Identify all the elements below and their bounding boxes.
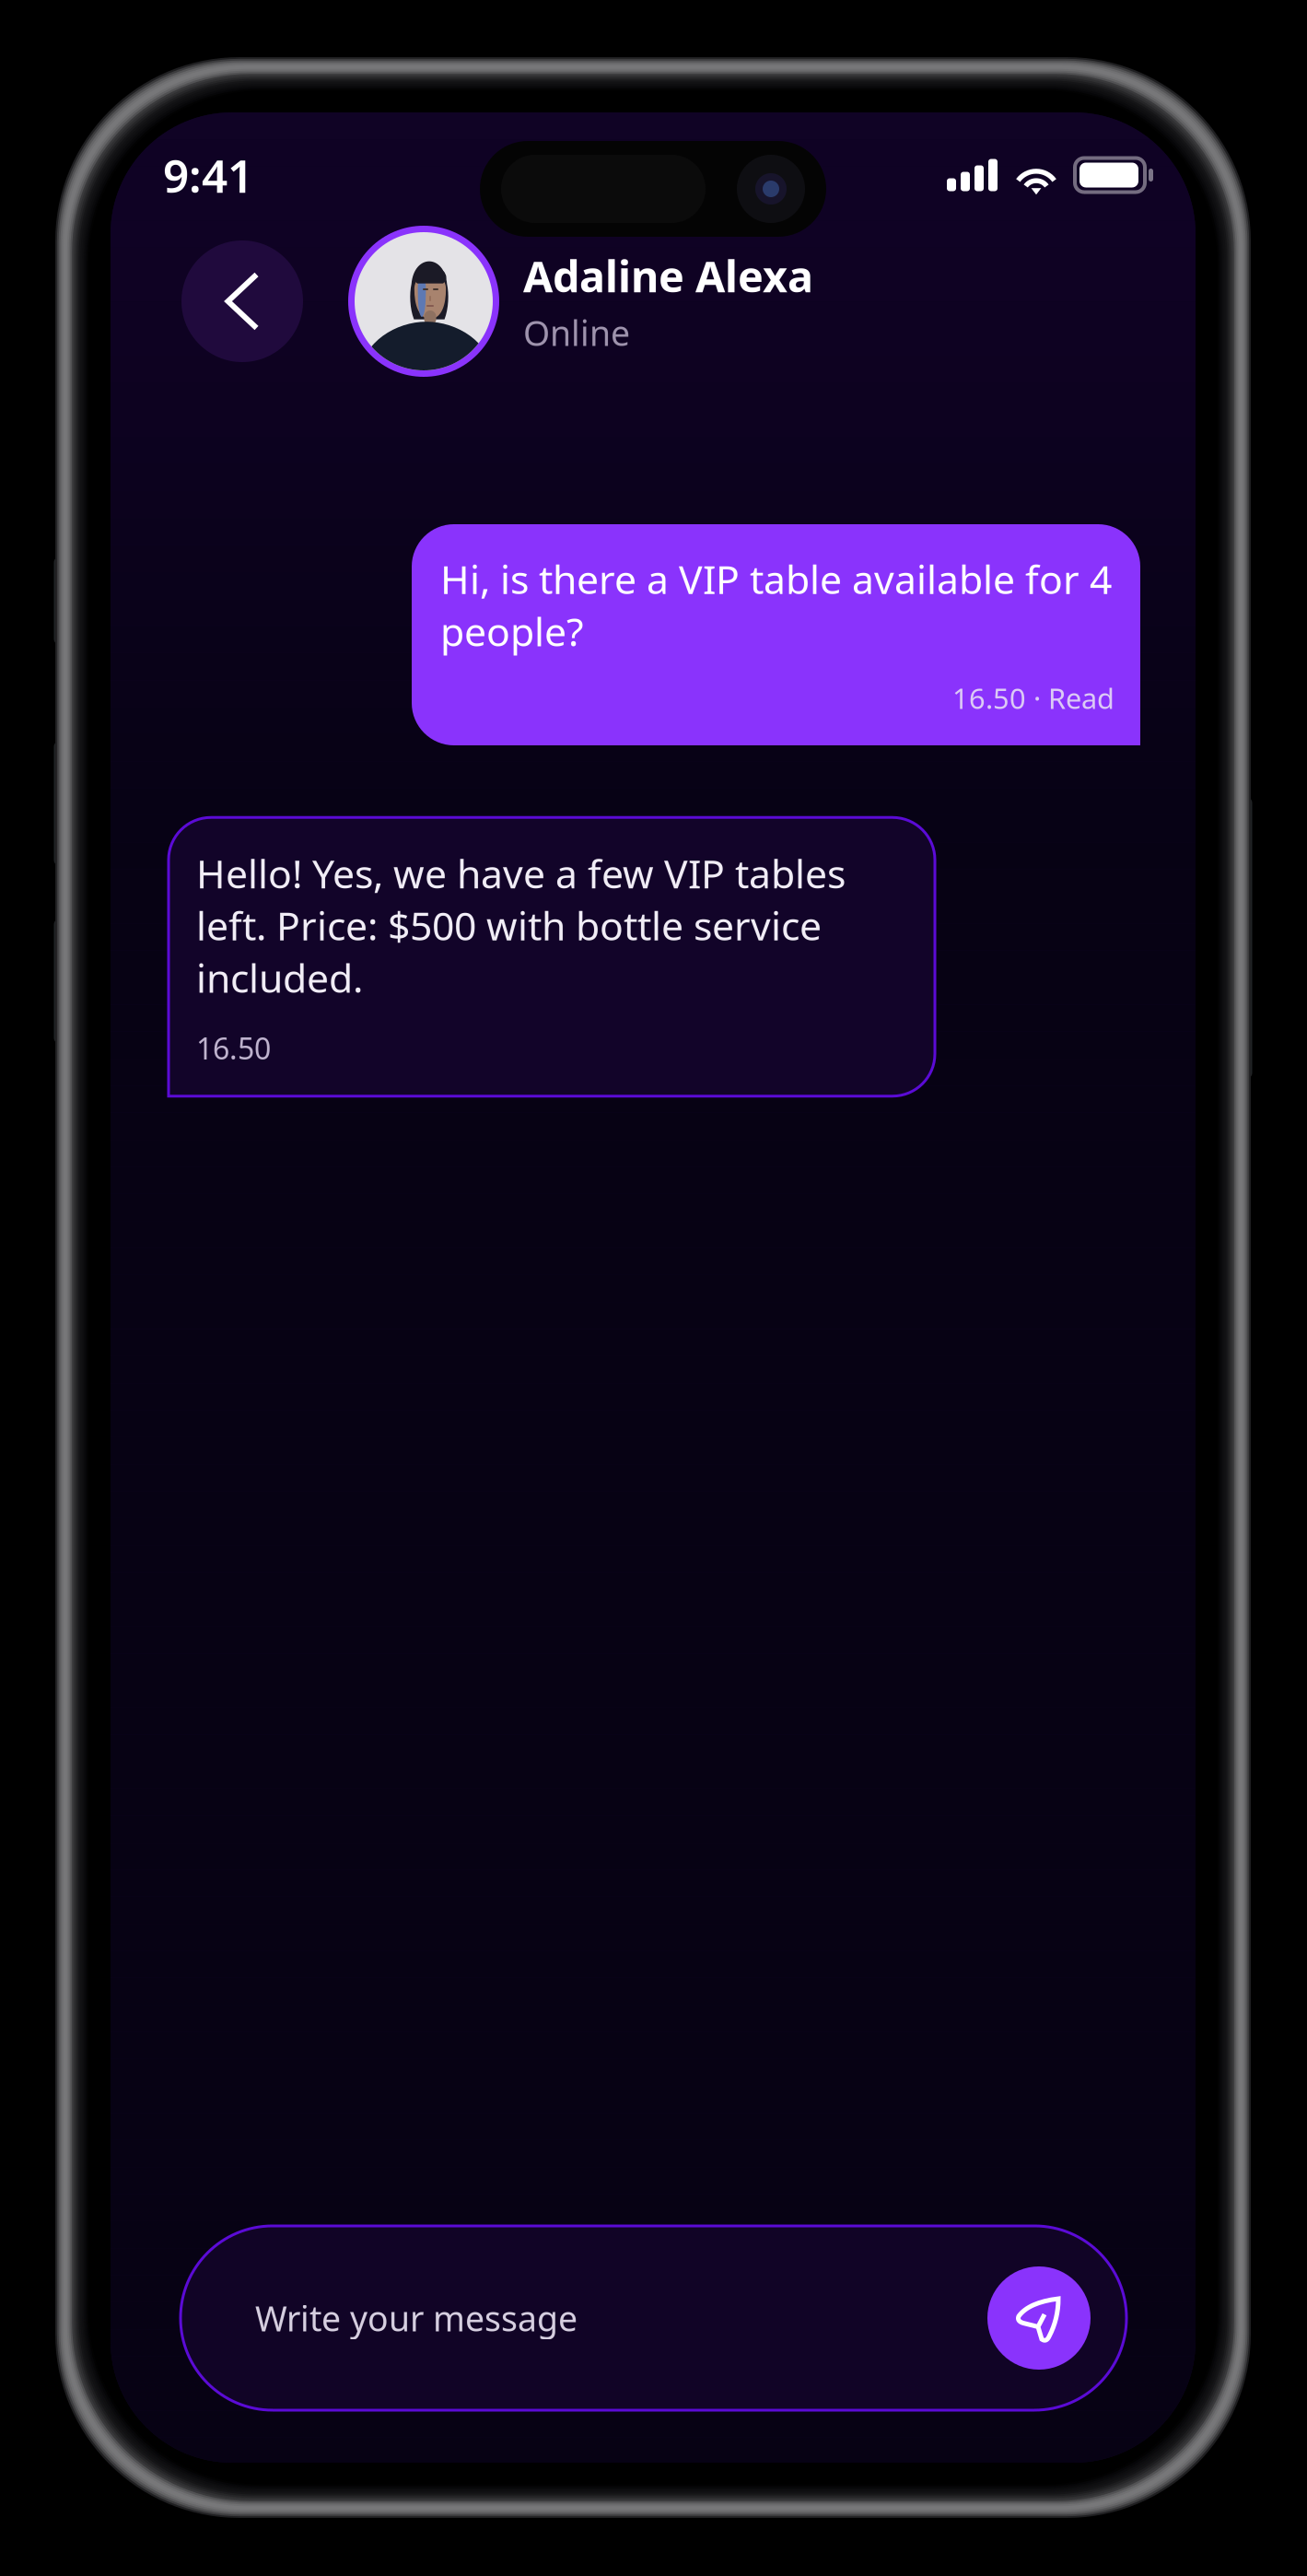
- staticText: 16.50: [196, 1028, 271, 1068]
- staticText: Write your message: [255, 2295, 578, 2341]
- button[interactable]: Send message: [987, 2266, 1091, 2370]
- staticText: Online: [523, 310, 630, 355]
- staticText: 9:41: [163, 145, 253, 205]
- staticText: Hi, is there a VIP table available for 4…: [440, 553, 1112, 657]
- staticText: Hello! Yes, we have a few VIP tables lef…: [196, 847, 846, 1004]
- staticText: Adaline Alexa: [523, 247, 813, 304]
- button[interactable]: Adaline Alexa: [348, 226, 1125, 377]
- staticText: 16.50 · Read: [952, 679, 1114, 717]
- button[interactable]: Back: [181, 240, 303, 362]
